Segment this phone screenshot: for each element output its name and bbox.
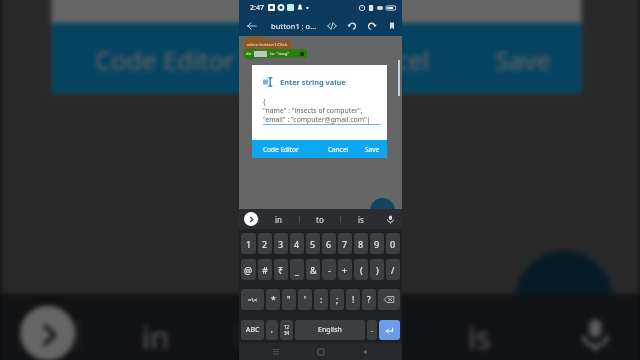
button[interactable]: do xyxy=(244,49,307,58)
button[interactable]: ₹ xyxy=(274,259,288,280)
button[interactable]: in xyxy=(75,294,236,360)
button[interactable]: =\< xyxy=(241,289,264,310)
button[interactable]: Home xyxy=(313,344,329,360)
staticText: 6 xyxy=(326,238,332,250)
button[interactable]: 8 xyxy=(354,233,368,254)
button[interactable]: . xyxy=(367,320,377,340)
staticText: " xyxy=(287,294,291,306)
button[interactable]: Cancel xyxy=(338,23,444,94)
staticText: * xyxy=(271,294,276,306)
staticText: do xyxy=(246,51,252,57)
button[interactable]: , xyxy=(266,320,278,340)
button[interactable]: : xyxy=(314,289,328,310)
staticText: Save xyxy=(365,145,380,154)
button[interactable]: More suggestions xyxy=(20,306,75,360)
button[interactable]: English xyxy=(295,320,365,340)
staticText: 3 xyxy=(278,238,284,250)
button[interactable]: Voice input xyxy=(381,210,399,228)
button[interactable]: 6 xyxy=(322,233,336,254)
button[interactable]: 3 xyxy=(274,233,288,254)
button[interactable]: ? xyxy=(362,289,376,310)
staticText: "name" : "insects of computer", xyxy=(263,106,363,115)
staticText: =\< xyxy=(248,296,258,304)
button[interactable]: Add block xyxy=(515,251,613,349)
button[interactable]: when button1.Click xyxy=(244,40,291,49)
staticText: when button1.Click xyxy=(247,42,288,48)
button[interactable]: ) xyxy=(370,259,384,280)
staticText: to "msg" xyxy=(270,51,290,57)
button[interactable]: Save xyxy=(363,140,387,158)
button[interactable]: Enter xyxy=(379,320,400,340)
button[interactable]: 5 xyxy=(306,233,320,254)
staticText: ? xyxy=(367,294,371,306)
button[interactable]: is xyxy=(340,209,381,229)
button[interactable]: 0 xyxy=(386,233,400,254)
button[interactable]: * xyxy=(266,289,280,310)
button[interactable]: @ xyxy=(241,259,256,280)
staticText: to xyxy=(316,214,324,225)
button[interactable]: Recents xyxy=(268,344,284,360)
staticText: ; xyxy=(336,294,339,306)
staticText: 7 xyxy=(342,238,348,250)
staticText: 9 xyxy=(374,238,380,250)
button[interactable]: _ xyxy=(290,259,304,280)
staticText: , xyxy=(271,325,273,335)
button[interactable]: in xyxy=(258,209,299,229)
staticText: Save xyxy=(495,43,554,78)
staticText: 2 xyxy=(262,238,268,250)
button[interactable]: Backspace xyxy=(378,289,400,310)
button[interactable]: is xyxy=(397,294,558,360)
button[interactable]: Save xyxy=(487,23,582,94)
staticText: : xyxy=(320,294,323,306)
button[interactable]: Redo xyxy=(364,18,379,33)
button[interactable]: / xyxy=(386,259,400,280)
staticText: to xyxy=(303,313,334,357)
button[interactable]: to xyxy=(236,294,397,360)
button[interactable]: Back xyxy=(357,344,373,360)
staticText: button1 : o... xyxy=(271,21,317,31)
staticText: ( xyxy=(360,264,363,276)
staticText: _ xyxy=(295,264,299,276)
button[interactable]: ; xyxy=(330,289,344,310)
staticText: - xyxy=(328,264,331,276)
staticText: / xyxy=(391,264,395,276)
button[interactable]: ( xyxy=(354,259,368,280)
staticText: & xyxy=(310,264,317,276)
button[interactable]: to xyxy=(299,209,340,229)
button[interactable]: - xyxy=(322,259,336,280)
button[interactable]: # xyxy=(258,259,272,280)
button[interactable]: 2 xyxy=(258,233,272,254)
staticText: 34 xyxy=(284,330,290,336)
staticText: ) xyxy=(376,264,379,276)
button[interactable]: ! xyxy=(346,289,360,310)
button[interactable]: Code Editor xyxy=(252,140,303,158)
staticText: . xyxy=(371,325,373,335)
button[interactable]: Undo xyxy=(344,18,359,33)
button[interactable]: 4 xyxy=(290,233,304,254)
button[interactable]: " xyxy=(282,289,296,310)
staticText: { xyxy=(263,97,266,106)
button[interactable]: Code view xyxy=(324,18,339,33)
button[interactable]: ABC xyxy=(241,320,264,340)
button[interactable]: & xyxy=(306,259,320,280)
button[interactable]: ' xyxy=(298,289,312,310)
button[interactable]: Voice input xyxy=(558,298,629,360)
staticText: Code Editor xyxy=(263,145,299,154)
button[interactable]: Bookmark xyxy=(384,18,399,33)
button[interactable]: + xyxy=(338,259,352,280)
button[interactable]: More suggestions xyxy=(244,212,258,226)
staticText: ' xyxy=(304,294,306,306)
button[interactable]: 9 xyxy=(370,233,384,254)
staticText: ₹ xyxy=(278,264,284,276)
button[interactable]: Code Editor xyxy=(51,23,252,94)
staticText: 4 xyxy=(294,238,300,250)
staticText: in xyxy=(275,214,283,225)
button[interactable]: Add block xyxy=(370,198,395,223)
button[interactable]: Symbols xyxy=(280,320,293,340)
button[interactable]: Back xyxy=(243,17,261,35)
staticText: is xyxy=(358,214,364,225)
button[interactable]: 7 xyxy=(338,233,352,254)
button[interactable]: 1 xyxy=(241,233,256,254)
staticText: ABC xyxy=(246,325,260,335)
button[interactable]: Cancel xyxy=(325,140,352,158)
